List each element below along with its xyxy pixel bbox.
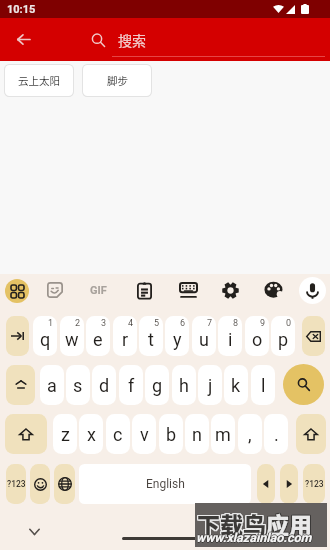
- button[interactable]: Keyboard settings: [176, 278, 200, 302]
- button[interactable]: 4: [113, 316, 137, 356]
- staticText: 脚步: [107, 73, 128, 88]
- button[interactable]: s: [66, 365, 90, 405]
- staticText: i: [228, 329, 233, 350]
- button[interactable]: l: [251, 365, 275, 405]
- staticText: .: [274, 424, 279, 445]
- button[interactable]: h: [172, 365, 196, 405]
- staticText: d: [99, 375, 110, 396]
- button[interactable]: k: [224, 365, 248, 405]
- staticText: 下载鸟: [197, 506, 266, 539]
- button[interactable]: a: [40, 365, 64, 405]
- staticText: ?123: [7, 479, 26, 489]
- staticText: GIF: [90, 284, 107, 297]
- button[interactable]: Symbols: [6, 464, 26, 504]
- staticText: 应用: [265, 507, 311, 540]
- button[interactable]: x: [79, 414, 103, 454]
- staticText: www.xlazainlao.com: [196, 530, 312, 545]
- button[interactable]: 7: [192, 316, 216, 356]
- button[interactable]: j: [198, 365, 222, 405]
- button[interactable]: Shift: [296, 414, 326, 454]
- button[interactable]: 6: [165, 316, 189, 356]
- staticText: q: [40, 329, 51, 350]
- staticText: 下载鸟: [198, 506, 267, 539]
- button[interactable]: ,: [238, 414, 262, 454]
- staticText: f: [128, 375, 135, 396]
- staticText: English: [146, 477, 185, 491]
- button[interactable]: 5: [139, 316, 163, 356]
- button[interactable]: 3: [86, 316, 110, 356]
- button[interactable]: Symbols: [303, 464, 325, 504]
- button[interactable]: 1: [33, 316, 57, 356]
- button[interactable]: Settings: [218, 278, 242, 302]
- button[interactable]: v: [132, 414, 156, 454]
- button[interactable]: 搜索: [91, 30, 146, 50]
- staticText: w: [65, 329, 79, 350]
- staticText: v: [140, 424, 149, 445]
- staticText: 9: [260, 318, 266, 329]
- staticText: p: [278, 329, 289, 350]
- staticText: h: [179, 375, 189, 396]
- staticText: www.xlazainlao.com: [195, 530, 311, 545]
- staticText: x: [87, 424, 96, 445]
- button[interactable]: 云上太阳: [5, 65, 73, 96]
- button[interactable]: 8: [218, 316, 242, 356]
- button[interactable]: z: [53, 414, 77, 454]
- staticText: 下载鸟: [198, 507, 267, 540]
- button[interactable]: GIF: [87, 279, 110, 301]
- button[interactable]: Hide keyboard: [24, 521, 45, 542]
- button[interactable]: Stickers: [43, 278, 67, 302]
- button[interactable]: Apps: [5, 279, 29, 303]
- button[interactable]: Back: [11, 27, 35, 51]
- staticText: www.xlazainlao.com: [196, 529, 312, 544]
- staticText: r: [122, 329, 129, 350]
- staticText: k: [231, 375, 241, 396]
- button[interactable]: f: [119, 365, 143, 405]
- staticText: 下载鸟: [197, 507, 266, 540]
- button[interactable]: 9: [245, 316, 269, 356]
- button[interactable]: Emoji: [30, 464, 50, 504]
- button[interactable]: .: [264, 414, 288, 454]
- staticText: y: [173, 329, 182, 350]
- staticText: 应用: [266, 506, 312, 539]
- button[interactable]: Caps lock: [5, 414, 47, 454]
- button[interactable]: 2: [60, 316, 84, 356]
- button[interactable]: m: [211, 414, 235, 454]
- button[interactable]: n: [185, 414, 209, 454]
- button[interactable]: Backspace: [302, 316, 325, 356]
- button[interactable]: Move cursor left: [257, 464, 275, 504]
- button[interactable]: d: [92, 365, 116, 405]
- staticText: 7: [207, 318, 213, 329]
- staticText: 应用: [267, 507, 313, 540]
- button[interactable]: English: [79, 464, 251, 504]
- button[interactable]: 0: [271, 316, 295, 356]
- staticText: o: [252, 329, 263, 350]
- staticText: www.xlazainlao.com: [197, 530, 313, 545]
- staticText: 下载鸟: [196, 508, 265, 541]
- button[interactable]: Shift: [6, 365, 35, 405]
- staticText: 3: [101, 318, 107, 329]
- button[interactable]: b: [159, 414, 183, 454]
- staticText: 应用: [267, 506, 313, 539]
- staticText: c: [113, 424, 123, 445]
- button[interactable]: Move cursor right: [280, 464, 298, 504]
- button[interactable]: Clipboard: [132, 278, 156, 302]
- staticText: 应用: [266, 507, 312, 540]
- staticText: e: [93, 329, 103, 350]
- staticText: 应用: [266, 508, 312, 541]
- button[interactable]: g: [145, 365, 169, 405]
- staticText: l: [261, 375, 266, 396]
- button[interactable]: Tab: [6, 316, 29, 356]
- staticText: 1: [48, 318, 54, 329]
- staticText: b: [166, 424, 177, 445]
- staticText: 应用: [265, 506, 311, 539]
- button[interactable]: c: [106, 414, 130, 454]
- button[interactable]: Theme: [262, 278, 286, 302]
- button[interactable]: Language: [54, 464, 75, 504]
- button[interactable]: Search: [283, 364, 324, 405]
- staticText: 0: [286, 318, 292, 329]
- staticText: 搜索: [118, 30, 146, 50]
- button[interactable]: 脚步: [83, 65, 151, 96]
- button[interactable]: Voice input: [299, 277, 326, 304]
- staticText: 5: [154, 318, 160, 329]
- staticText: ,: [248, 424, 252, 445]
